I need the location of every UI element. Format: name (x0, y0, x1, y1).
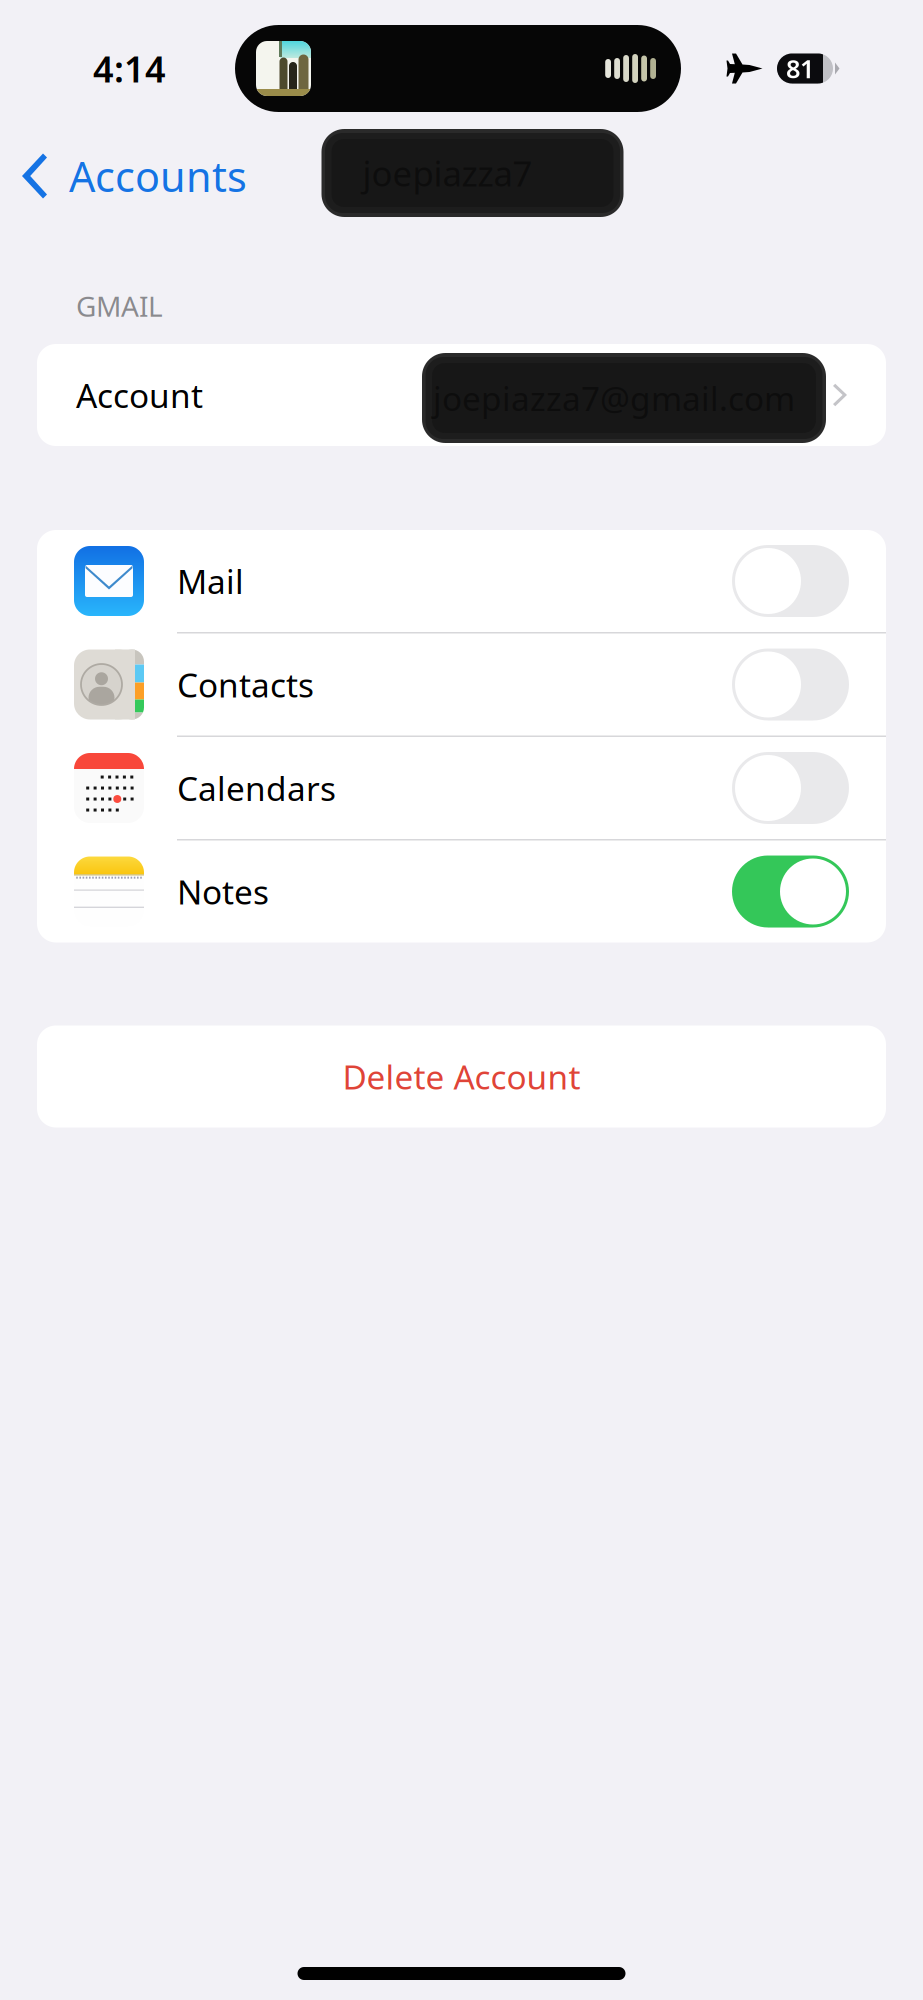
button[interactable]: Account (37, 344, 886, 446)
staticText: Calendars (177, 766, 336, 810)
button[interactable]: Delete Account (37, 1025, 886, 1127)
staticText: GMAIL (76, 287, 163, 325)
staticText: joepiazza7@gmail.com (433, 376, 795, 420)
button[interactable]: Accounts (0, 125, 265, 217)
staticText: Notes (177, 869, 269, 914)
button[interactable]: Mail (37, 530, 886, 632)
staticText: Delete Account (342, 1054, 580, 1099)
staticText: joepiazza7 (362, 150, 532, 196)
staticText: Contacts (177, 662, 314, 707)
staticText: Account (76, 373, 203, 417)
button[interactable]: Calendars (37, 737, 886, 839)
staticText: Accounts (69, 149, 247, 203)
staticText: Mail (177, 559, 244, 603)
button[interactable]: Contacts (37, 633, 886, 735)
staticText: 81 (786, 52, 814, 85)
staticText: 4:14 (93, 45, 166, 92)
button[interactable]: Notes (37, 840, 886, 942)
